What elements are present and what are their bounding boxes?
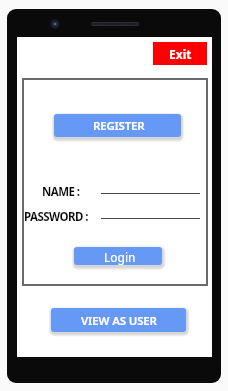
button[interactable]: Exit [153,42,207,65]
button[interactable]: Login [74,247,162,265]
staticText: Login [104,249,136,265]
button[interactable]: REGISTER [54,114,181,137]
button[interactable]: VIEW AS USER [51,308,186,332]
staticText: VIEW AS USER [81,313,157,329]
staticText: PASSWORD : [24,209,88,225]
button[interactable]: Name input field [101,180,200,194]
button[interactable]: Password input field [101,205,200,219]
staticText: Exit [169,46,192,62]
staticText: NAME : [42,184,80,200]
other: Front camera [50,19,60,29]
staticText: REGISTER [93,118,145,134]
